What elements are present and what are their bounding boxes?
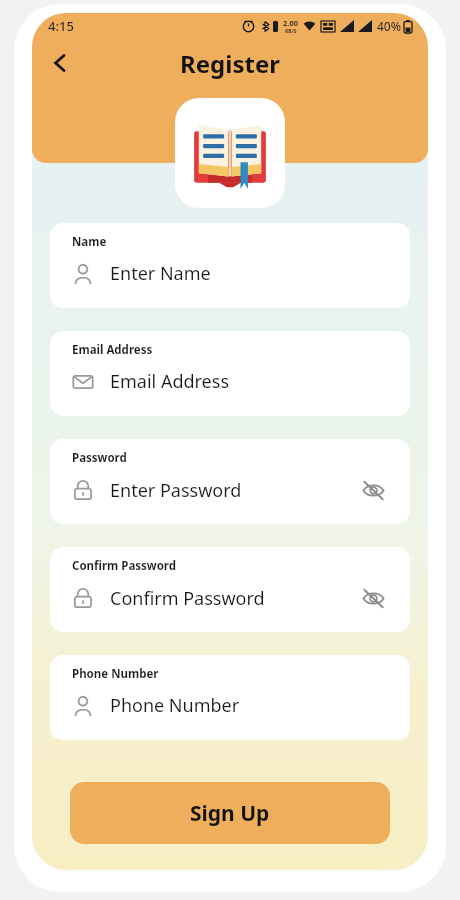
staticText: Sign Up — [190, 799, 270, 828]
staticText: Enter Name — [110, 261, 211, 286]
staticText: KB/S — [285, 28, 297, 35]
staticText: Confirm Password — [72, 558, 177, 574]
button[interactable]: Name — [50, 223, 410, 308]
staticText: 40% — [377, 18, 401, 34]
staticText: Email Address — [110, 369, 230, 394]
button[interactable]: Confirm Password — [50, 547, 410, 632]
staticText: Phone Number — [72, 666, 159, 682]
button[interactable]: Email Address — [50, 331, 410, 416]
button[interactable]: Phone Number — [50, 655, 410, 740]
button[interactable]: Sign Up — [70, 782, 390, 844]
staticText: Confirm Password — [110, 586, 265, 611]
staticText: Enter Password — [110, 478, 242, 503]
button[interactable]: Toggle password visibility — [356, 581, 390, 615]
staticText: Name — [72, 234, 107, 250]
staticText: 4:15 — [48, 17, 74, 35]
staticText: Email Address — [72, 342, 153, 358]
staticText: Phone Number — [110, 693, 240, 718]
button[interactable]: Back — [38, 41, 82, 85]
staticText: Register — [180, 47, 280, 80]
button[interactable]: Toggle password visibility — [356, 473, 390, 507]
button[interactable]: Password — [50, 439, 410, 524]
staticText: 2.00 — [283, 18, 298, 28]
staticText: Password — [72, 450, 127, 466]
